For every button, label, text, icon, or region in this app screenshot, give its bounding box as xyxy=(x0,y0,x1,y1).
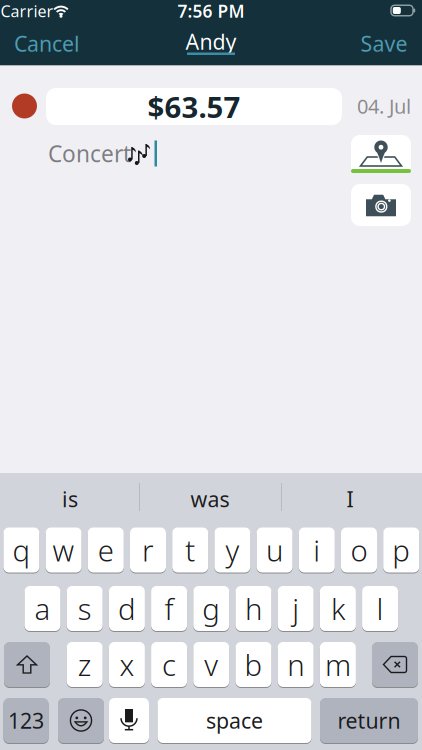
button[interactable]: 123 xyxy=(3,698,48,743)
button[interactable] xyxy=(372,642,418,687)
button[interactable]: k xyxy=(320,586,356,631)
button[interactable]: j xyxy=(278,586,314,631)
button[interactable]: m xyxy=(320,642,356,687)
button[interactable]: z xyxy=(67,642,103,687)
staticText: s xyxy=(78,589,92,628)
button[interactable]: space xyxy=(157,698,311,743)
staticText: was xyxy=(190,485,229,513)
staticText: m xyxy=(325,645,351,684)
staticText: is xyxy=(62,485,78,513)
staticText: $63.57 xyxy=(147,87,240,126)
button[interactable] xyxy=(58,698,104,743)
staticText: x xyxy=(119,645,134,684)
button[interactable]: x xyxy=(109,642,145,687)
staticText: 123 xyxy=(8,706,44,735)
staticText: q xyxy=(12,530,30,569)
staticText: t xyxy=(185,530,195,569)
button[interactable]: o xyxy=(341,527,377,572)
button[interactable]: w xyxy=(46,527,82,572)
staticText: v xyxy=(204,645,218,684)
staticText: I xyxy=(346,485,353,513)
button[interactable]: c xyxy=(151,642,187,687)
button[interactable] xyxy=(351,184,411,226)
button[interactable]: u xyxy=(257,527,293,572)
button[interactable]: r xyxy=(130,527,166,572)
staticText: i xyxy=(313,530,320,569)
button[interactable]: h xyxy=(235,586,271,631)
staticText: j xyxy=(292,589,299,628)
staticText: r xyxy=(142,530,154,569)
button[interactable]: p xyxy=(383,527,419,572)
button[interactable]: b xyxy=(235,642,271,687)
staticText: a xyxy=(34,589,50,628)
staticText: p xyxy=(392,530,410,569)
button[interactable]: Concert xyxy=(46,135,342,172)
staticText: u xyxy=(266,530,283,569)
staticText: c xyxy=(162,645,176,684)
staticText: Cancel xyxy=(14,29,80,58)
button[interactable]: d xyxy=(109,586,145,631)
button[interactable]: I xyxy=(285,477,415,521)
staticText: 7:56 PM xyxy=(177,0,244,22)
staticText: Save xyxy=(360,29,407,58)
button[interactable]: i xyxy=(299,527,335,572)
button[interactable]: e xyxy=(88,527,124,572)
staticText: l xyxy=(377,589,384,628)
staticText: e xyxy=(98,530,114,569)
button[interactable]: l xyxy=(362,586,398,631)
staticText: w xyxy=(53,530,75,569)
button[interactable]: a xyxy=(24,586,60,631)
button[interactable]: Cancel xyxy=(7,22,87,65)
staticText: g xyxy=(202,589,220,628)
staticText: d xyxy=(118,589,136,628)
staticText: y xyxy=(225,530,239,569)
staticText: space xyxy=(206,706,263,735)
staticText: Concert xyxy=(48,138,131,168)
button[interactable]: g xyxy=(193,586,229,631)
button[interactable]: v xyxy=(193,642,229,687)
button[interactable]: Andy xyxy=(180,30,242,63)
button[interactable]: return xyxy=(320,698,418,743)
button[interactable]: q xyxy=(3,527,39,572)
staticText: Andy xyxy=(185,27,236,56)
staticText: k xyxy=(331,589,345,628)
button[interactable]: was xyxy=(145,477,275,521)
button[interactable]: n xyxy=(278,642,314,687)
button[interactable]: s xyxy=(67,586,103,631)
staticText: f xyxy=(165,589,174,628)
button[interactable] xyxy=(351,135,411,173)
staticText: o xyxy=(350,530,367,569)
button[interactable]: $63.57 xyxy=(46,88,342,125)
staticText: return xyxy=(337,706,400,735)
button[interactable]: f xyxy=(151,586,187,631)
staticText: 04. Jul xyxy=(357,93,411,119)
staticText: b xyxy=(244,645,262,684)
staticText: n xyxy=(287,645,304,684)
button[interactable] xyxy=(4,642,50,687)
button[interactable]: t xyxy=(172,527,208,572)
button[interactable] xyxy=(12,93,37,118)
staticText: h xyxy=(245,589,262,628)
button[interactable]: y xyxy=(214,527,250,572)
button[interactable]: Save xyxy=(349,22,419,65)
button[interactable] xyxy=(109,698,149,743)
staticText: z xyxy=(78,645,92,684)
button[interactable]: is xyxy=(5,477,135,521)
staticText: Carrier xyxy=(0,0,53,22)
